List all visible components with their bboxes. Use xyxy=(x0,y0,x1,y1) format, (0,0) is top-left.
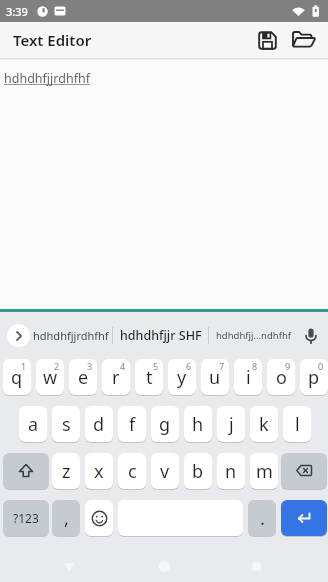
button[interactable]: hdhdhfjjr SHF xyxy=(113,327,208,344)
staticText: i xyxy=(246,365,251,390)
button[interactable] xyxy=(298,323,324,349)
staticText: 6 xyxy=(186,360,192,372)
staticText: hdhdhfjj...ndhfhf xyxy=(216,329,292,342)
staticText: 3:39 xyxy=(6,4,28,19)
button[interactable]: c xyxy=(118,453,146,490)
staticText: c xyxy=(128,459,137,484)
staticText: . xyxy=(260,506,265,531)
staticText: hdhdhfjjrdhfhf xyxy=(33,328,109,343)
button[interactable]: ?123 xyxy=(3,500,49,537)
button[interactable]: a xyxy=(19,406,47,443)
staticText: p xyxy=(308,365,320,390)
staticText: l xyxy=(295,412,300,437)
button[interactable]: y xyxy=(168,359,196,396)
staticText: 0 xyxy=(318,360,324,372)
staticText: 5 xyxy=(153,360,159,372)
button[interactable] xyxy=(250,23,284,57)
button[interactable] xyxy=(118,500,243,537)
staticText: n xyxy=(225,459,237,484)
staticText: y xyxy=(177,365,187,390)
button[interactable]: h xyxy=(184,406,212,443)
staticText: 1 xyxy=(21,360,27,372)
button[interactable]: j xyxy=(217,406,245,443)
button[interactable]: hdhdhfjjrdhfhf xyxy=(30,328,112,343)
staticText: e xyxy=(78,365,89,390)
staticText: f xyxy=(129,412,136,437)
button[interactable]: x xyxy=(85,453,113,490)
button[interactable]: u xyxy=(201,359,229,396)
staticText: x xyxy=(94,459,104,484)
button[interactable] xyxy=(152,554,176,578)
button[interactable]: q xyxy=(3,359,31,396)
staticText: h xyxy=(192,412,204,437)
staticText: 2 xyxy=(54,360,60,372)
button[interactable]: p xyxy=(300,359,328,396)
staticText: g xyxy=(159,412,171,437)
button[interactable]: s xyxy=(52,406,80,443)
staticText: v xyxy=(160,459,170,484)
button[interactable]: i xyxy=(234,359,262,396)
button[interactable] xyxy=(286,22,322,58)
staticText: r xyxy=(112,365,120,390)
button[interactable]: , xyxy=(52,500,80,537)
staticText: 9 xyxy=(285,360,291,372)
staticText: hdhdhfjjr SHF xyxy=(120,327,202,344)
staticText: ?123 xyxy=(13,510,39,526)
button[interactable]: k xyxy=(250,406,278,443)
button[interactable] xyxy=(57,554,81,578)
staticText: hdhdhfjjrdhfhf xyxy=(4,70,90,87)
button[interactable] xyxy=(281,453,327,490)
staticText: Text Editor xyxy=(13,30,92,50)
staticText: 3 xyxy=(87,360,93,372)
button[interactable]: f xyxy=(118,406,146,443)
button[interactable]: hdhdhfjj...ndhfhf xyxy=(209,329,298,342)
staticText: w xyxy=(43,365,58,390)
staticText: s xyxy=(62,412,71,437)
button[interactable] xyxy=(244,554,268,578)
button[interactable]: z xyxy=(52,453,80,490)
staticText: o xyxy=(276,365,287,390)
staticText: k xyxy=(259,412,269,437)
button[interactable]: r xyxy=(102,359,130,396)
button[interactable] xyxy=(281,500,327,537)
button[interactable]: d xyxy=(85,406,113,443)
staticText: q xyxy=(11,365,23,390)
staticText: d xyxy=(93,412,105,437)
button[interactable]: g xyxy=(151,406,179,443)
staticText: m xyxy=(256,459,273,484)
button[interactable]: n xyxy=(217,453,245,490)
staticText: 7 xyxy=(219,360,225,372)
button[interactable] xyxy=(85,500,113,537)
staticText: u xyxy=(209,365,221,390)
staticText: , xyxy=(64,506,69,531)
button[interactable]: m xyxy=(250,453,278,490)
staticText: a xyxy=(28,412,39,437)
button[interactable]: b xyxy=(184,453,212,490)
button[interactable]: t xyxy=(135,359,163,396)
button[interactable] xyxy=(7,324,30,347)
staticText: b xyxy=(192,459,204,484)
staticText: t xyxy=(146,365,153,390)
button[interactable] xyxy=(3,453,49,490)
staticText: 4 xyxy=(120,360,126,372)
button[interactable]: w xyxy=(36,359,64,396)
staticText: z xyxy=(62,459,71,484)
staticText: 8 xyxy=(252,360,258,372)
staticText: j xyxy=(229,412,234,437)
button[interactable]: v xyxy=(151,453,179,490)
button[interactable]: e xyxy=(69,359,97,396)
button[interactable]: . xyxy=(248,500,276,537)
button[interactable]: l xyxy=(283,406,311,443)
button[interactable]: o xyxy=(267,359,295,396)
